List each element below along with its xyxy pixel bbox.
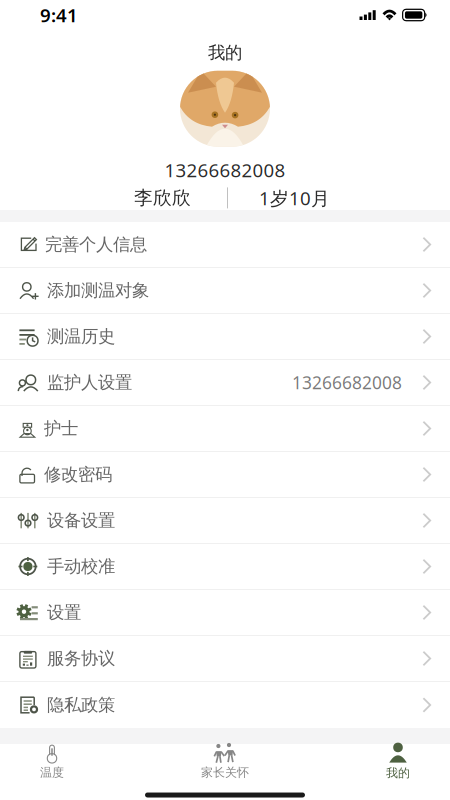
staticText: 温度 [40, 765, 64, 780]
button[interactable]: 完善个人信息 [0, 222, 450, 268]
staticText: 隐私政策 [47, 694, 115, 716]
staticText: 1岁10月 [259, 185, 330, 210]
staticText: 修改密码 [44, 464, 112, 485]
button[interactable]: 服务协议 [0, 636, 450, 682]
staticText: 手动校准 [47, 556, 115, 577]
staticText: 9:41 [40, 3, 78, 27]
staticText: 设备设置 [47, 510, 115, 531]
button[interactable]: 家长关怀 [197, 744, 253, 788]
button[interactable]: 我的 [370, 744, 426, 788]
staticText: 设置 [47, 602, 81, 623]
staticText: 家长关怀 [201, 765, 249, 780]
button[interactable]: 设置 [0, 590, 450, 636]
button[interactable]: 护士 [0, 406, 450, 452]
button[interactable]: 设备设置 [0, 498, 450, 544]
button[interactable]: 测温历史 [0, 314, 450, 360]
staticText: 李欣欣 [134, 186, 191, 209]
staticText: 13266682008 [164, 158, 285, 182]
button[interactable]: 手动校准 [0, 544, 450, 590]
button[interactable]: 添加测温对象 [0, 268, 450, 314]
staticText: 13266682008 [292, 371, 402, 394]
staticText: 测温历史 [47, 326, 115, 347]
button[interactable]: 温度 [24, 744, 80, 788]
button[interactable]: 修改密码 [0, 452, 450, 498]
staticText: 我的 [386, 766, 410, 780]
staticText: 服务协议 [47, 648, 115, 669]
staticText: 添加测温对象 [47, 280, 149, 301]
staticText: 监护人设置 [47, 372, 132, 393]
button[interactable]: 隐私政策 [0, 682, 450, 728]
staticText: 我的 [208, 42, 242, 63]
button[interactable]: 监护人设置 [0, 360, 450, 406]
staticText: 护士 [44, 418, 78, 439]
staticText: 完善个人信息 [45, 234, 147, 255]
